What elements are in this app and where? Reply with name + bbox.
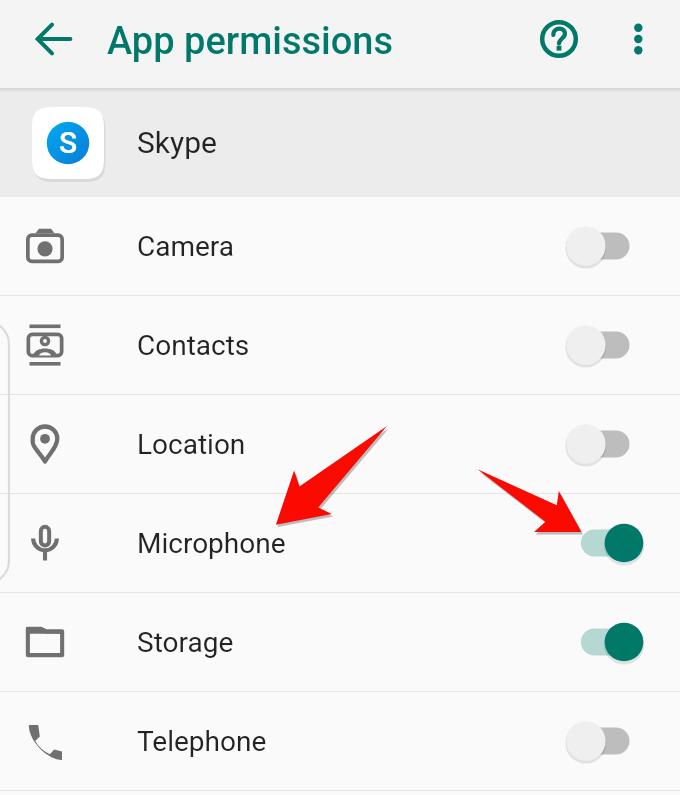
staticText: Contacts: [137, 329, 250, 362]
staticText: Camera: [137, 230, 235, 263]
staticText: Microphone: [137, 527, 286, 560]
button[interactable]: Contacts: [0, 296, 680, 394]
button[interactable]: Toggle Camera: [550, 215, 680, 277]
button[interactable]: Help: [531, 11, 587, 67]
button[interactable]: S: [0, 88, 680, 197]
button[interactable]: Storage: [0, 593, 680, 691]
button[interactable]: Toggle Storage: [550, 611, 680, 673]
staticText: S: [59, 125, 78, 160]
button[interactable]: Toggle Microphone: [550, 512, 680, 574]
button[interactable]: Back: [26, 11, 82, 67]
button[interactable]: Location: [0, 395, 680, 493]
button[interactable]: Toggle Location: [550, 413, 680, 475]
staticText: Telephone: [137, 725, 267, 758]
staticText: App permissions: [107, 19, 394, 64]
button[interactable]: Toggle Telephone: [550, 710, 680, 772]
button[interactable]: Telephone: [0, 692, 680, 790]
button[interactable]: More options: [610, 11, 666, 67]
staticText: Skype: [137, 125, 217, 160]
button[interactable]: Camera: [0, 197, 680, 295]
button[interactable]: Microphone: [0, 494, 680, 592]
staticText: Storage: [137, 626, 234, 659]
button[interactable]: Toggle Contacts: [550, 314, 680, 376]
staticText: Location: [137, 428, 246, 461]
